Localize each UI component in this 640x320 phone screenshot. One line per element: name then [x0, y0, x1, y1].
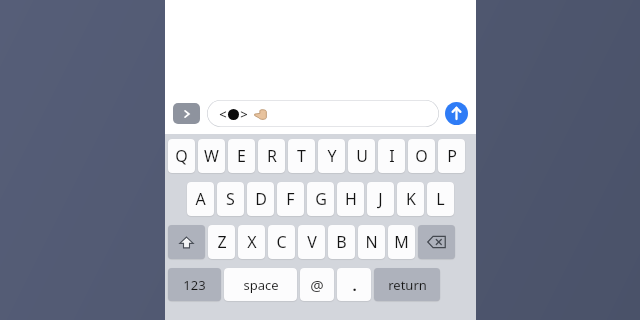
button[interactable]: .	[337, 268, 371, 301]
staticText: B	[336, 231, 347, 253]
staticText: N	[365, 231, 378, 253]
button[interactable]: V	[298, 225, 325, 259]
staticText: I	[389, 145, 395, 167]
button[interactable]: N	[358, 225, 385, 259]
staticText: D	[255, 188, 267, 210]
staticText: A	[195, 188, 206, 210]
button[interactable]: R	[258, 139, 285, 173]
staticText: P	[447, 145, 457, 167]
button[interactable]: Expand apps	[173, 103, 200, 124]
staticText: 123	[183, 276, 206, 294]
button[interactable]: I	[378, 139, 405, 173]
staticText: U	[356, 145, 368, 167]
staticText: K	[406, 188, 416, 210]
staticText: >	[240, 105, 248, 123]
staticText: Z	[217, 231, 227, 253]
button[interactable]: O	[408, 139, 435, 173]
button[interactable]: U	[348, 139, 375, 173]
staticText: J	[378, 188, 383, 210]
button[interactable]: C	[268, 225, 295, 259]
button[interactable]: <	[207, 100, 439, 127]
staticText: W	[204, 145, 219, 167]
staticText: C	[276, 231, 287, 253]
button[interactable]: P	[438, 139, 465, 173]
button[interactable]: 123	[168, 268, 221, 301]
button[interactable]: K	[397, 182, 424, 216]
button[interactable]: W	[198, 139, 225, 173]
button[interactable]: Y	[318, 139, 345, 173]
staticText: @	[310, 275, 324, 295]
staticText: V	[307, 231, 317, 253]
button[interactable]: T	[288, 139, 315, 173]
staticText: T	[297, 145, 306, 167]
button[interactable]: D	[247, 182, 274, 216]
button[interactable]: X	[238, 225, 265, 259]
button[interactable]: G	[307, 182, 334, 216]
button[interactable]: F	[277, 182, 304, 216]
staticText: Q	[175, 145, 188, 167]
button[interactable]: space	[224, 268, 297, 301]
button[interactable]: A	[187, 182, 214, 216]
button[interactable]: return	[374, 268, 440, 301]
staticText: E	[237, 145, 246, 167]
button[interactable]: M	[388, 225, 415, 259]
button[interactable]: Shift	[168, 225, 205, 259]
button[interactable]: S	[217, 182, 244, 216]
button[interactable]: E	[228, 139, 255, 173]
button[interactable]: L	[427, 182, 454, 216]
button[interactable]: H	[337, 182, 364, 216]
staticText: G	[315, 188, 327, 210]
staticText: R	[267, 145, 277, 167]
staticText: Y	[327, 145, 337, 167]
button[interactable]: B	[328, 225, 355, 259]
staticText: F	[286, 188, 295, 210]
staticText: space	[243, 276, 279, 294]
staticText: S	[226, 188, 235, 210]
staticText: return	[388, 276, 427, 294]
button[interactable]: Q	[168, 139, 195, 173]
button[interactable]: Send	[445, 102, 468, 125]
staticText: X	[247, 231, 257, 253]
staticText: L	[436, 188, 445, 210]
button[interactable]: Z	[208, 225, 235, 259]
button[interactable]: @	[300, 268, 334, 301]
staticText: <	[219, 105, 227, 123]
staticText: .	[352, 275, 357, 295]
staticText: O	[415, 145, 428, 167]
staticText: H	[345, 188, 357, 210]
button[interactable]: J	[367, 182, 394, 216]
button[interactable]: Backspace	[418, 225, 455, 259]
staticText: M	[394, 231, 409, 253]
